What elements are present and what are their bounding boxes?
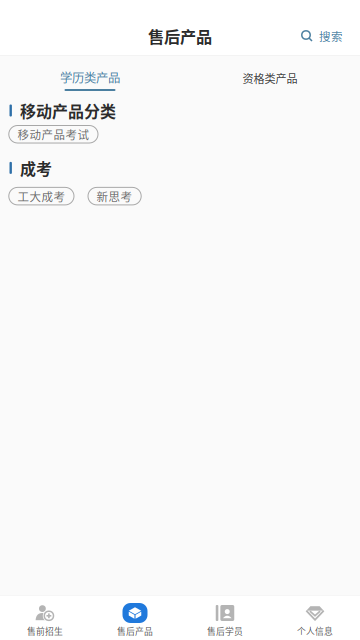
staticText: 售后产品 bbox=[117, 624, 153, 637]
button[interactable]: 售后产品 bbox=[90, 595, 180, 640]
button[interactable]: 售前招生 bbox=[0, 595, 90, 640]
staticText: 售后产品 bbox=[148, 24, 212, 48]
staticText: 学历类产品 bbox=[60, 68, 120, 86]
button[interactable]: 工大成考 bbox=[9, 187, 74, 205]
staticText: 售后学员 bbox=[207, 624, 243, 637]
staticText: 移动产品分类 bbox=[20, 99, 116, 122]
button[interactable]: 移动产品考试 bbox=[9, 125, 98, 143]
button[interactable]: 学历类产品 bbox=[0, 56, 180, 96]
staticText: 工大成考 bbox=[17, 188, 65, 204]
button[interactable]: 个人信息 bbox=[270, 595, 360, 640]
button[interactable]: 搜索 bbox=[284, 20, 360, 52]
button[interactable]: 资格类产品 bbox=[180, 56, 360, 96]
staticText: 移动产品考试 bbox=[17, 126, 89, 143]
staticText: 个人信息 bbox=[297, 624, 333, 637]
staticText: 搜索 bbox=[319, 28, 343, 44]
staticText: 售前招生 bbox=[27, 624, 63, 637]
button[interactable]: 新思考 bbox=[88, 187, 141, 205]
staticText: 资格类产品 bbox=[242, 70, 297, 86]
staticText: 新思考 bbox=[97, 188, 133, 204]
button[interactable]: 售后学员 bbox=[180, 595, 270, 640]
staticText: 成考 bbox=[20, 156, 52, 179]
